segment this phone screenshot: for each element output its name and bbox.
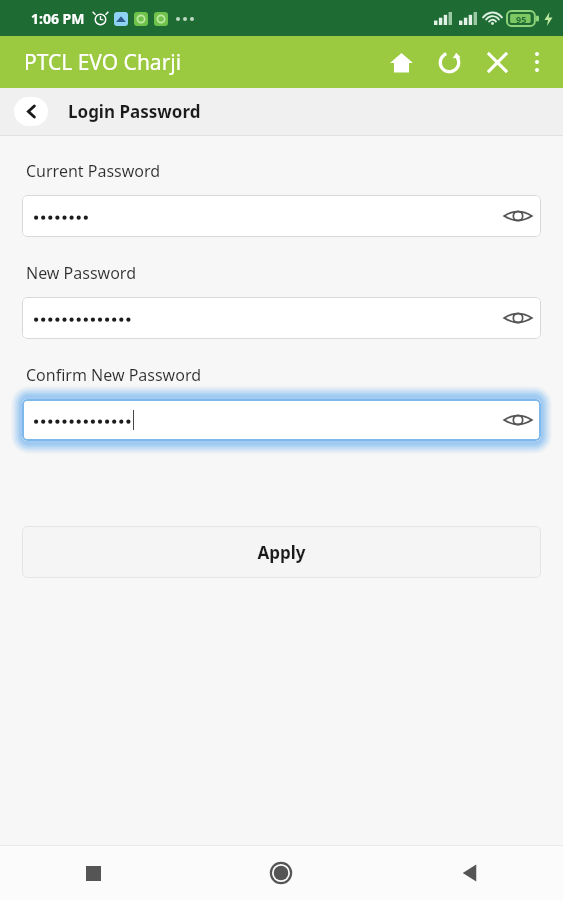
staticText: Confirm New Password — [26, 364, 202, 386]
button[interactable]: Show password — [22, 195, 541, 237]
button[interactable]: Show password — [22, 297, 541, 339]
button[interactable]: Show password — [495, 297, 541, 339]
button[interactable]: Apply — [22, 526, 541, 578]
button[interactable]: Show password — [22, 399, 541, 441]
button[interactable]: Close — [473, 38, 521, 86]
staticText: PTCL EVO Charji — [24, 48, 182, 77]
button[interactable]: Recent apps — [0, 846, 187, 900]
staticText: 95 — [516, 13, 527, 25]
staticText: Login Password — [68, 100, 201, 123]
staticText: Current Password — [26, 160, 161, 182]
button[interactable]: Refresh — [425, 38, 473, 86]
button[interactable]: Home — [187, 846, 375, 900]
button[interactable]: Home — [377, 38, 425, 86]
button[interactable]: Back — [375, 846, 563, 900]
staticText: Apply — [257, 541, 306, 564]
staticText: New Password — [26, 262, 136, 284]
button[interactable]: Show password — [495, 399, 541, 441]
button[interactable]: Show password — [495, 195, 541, 237]
button[interactable]: More options — [521, 38, 553, 86]
staticText: 1:06 PM — [31, 9, 85, 28]
button[interactable]: Back — [14, 97, 48, 126]
